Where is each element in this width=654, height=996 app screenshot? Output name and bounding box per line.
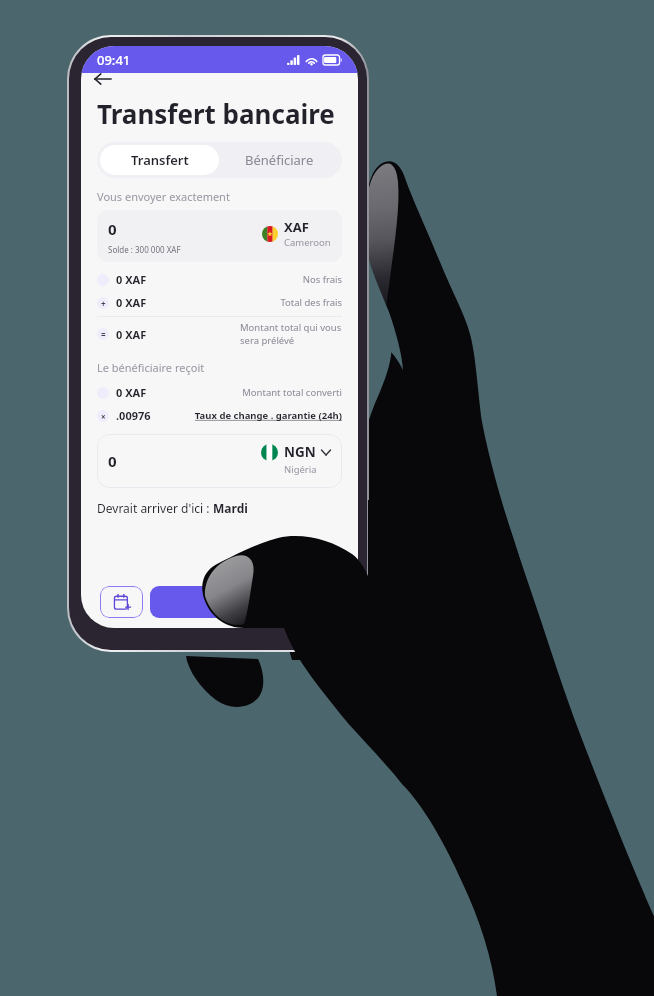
button[interactable]: Continuer	[150, 586, 344, 618]
staticText: Devrait arriver d'ici :	[97, 500, 213, 516]
staticText: NGN	[284, 443, 316, 461]
staticText: 0	[108, 451, 117, 471]
staticText: Transfert	[131, 151, 189, 169]
staticText: +	[101, 298, 106, 309]
staticText: 0 XAF	[116, 295, 147, 310]
staticText: 0 XAF	[116, 327, 147, 342]
button[interactable]: Bénéficiare	[219, 145, 339, 175]
staticText: Bénéficiare	[245, 151, 314, 169]
staticText: Nos frais	[302, 273, 342, 286]
staticText: =	[101, 329, 106, 340]
button[interactable]: Transfert	[100, 145, 219, 175]
staticText: 09:41	[97, 51, 131, 69]
staticText: Taux de change . garantie (24h)	[194, 409, 342, 422]
button[interactable]: 0	[97, 210, 342, 262]
staticText: Cameroon	[284, 236, 331, 249]
staticText: 0 XAF	[116, 385, 147, 400]
staticText: 0 XAF	[116, 272, 147, 287]
staticText: Nigéria	[284, 463, 317, 476]
staticText: Montant total converti	[242, 386, 342, 399]
button[interactable]: 0	[97, 434, 342, 488]
staticText: Montant total qui vous sera prélévé	[240, 321, 342, 347]
staticText: .00976	[116, 408, 151, 423]
staticText: ×	[101, 411, 106, 422]
staticText: 0	[108, 219, 117, 239]
staticText: Vous envoyer exactement	[97, 189, 230, 204]
staticText: Mardi	[213, 500, 248, 516]
staticText: Le bénéficiaire reçoit	[97, 360, 205, 375]
staticText: XAF	[284, 218, 309, 236]
button[interactable]: Back	[90, 66, 116, 92]
staticText: Total des frais	[280, 296, 342, 309]
button[interactable]: Schedule transfer	[100, 586, 143, 618]
staticText: Transfert bancaire	[97, 96, 335, 131]
staticText: Solde : 300 000 XAF	[108, 244, 181, 255]
